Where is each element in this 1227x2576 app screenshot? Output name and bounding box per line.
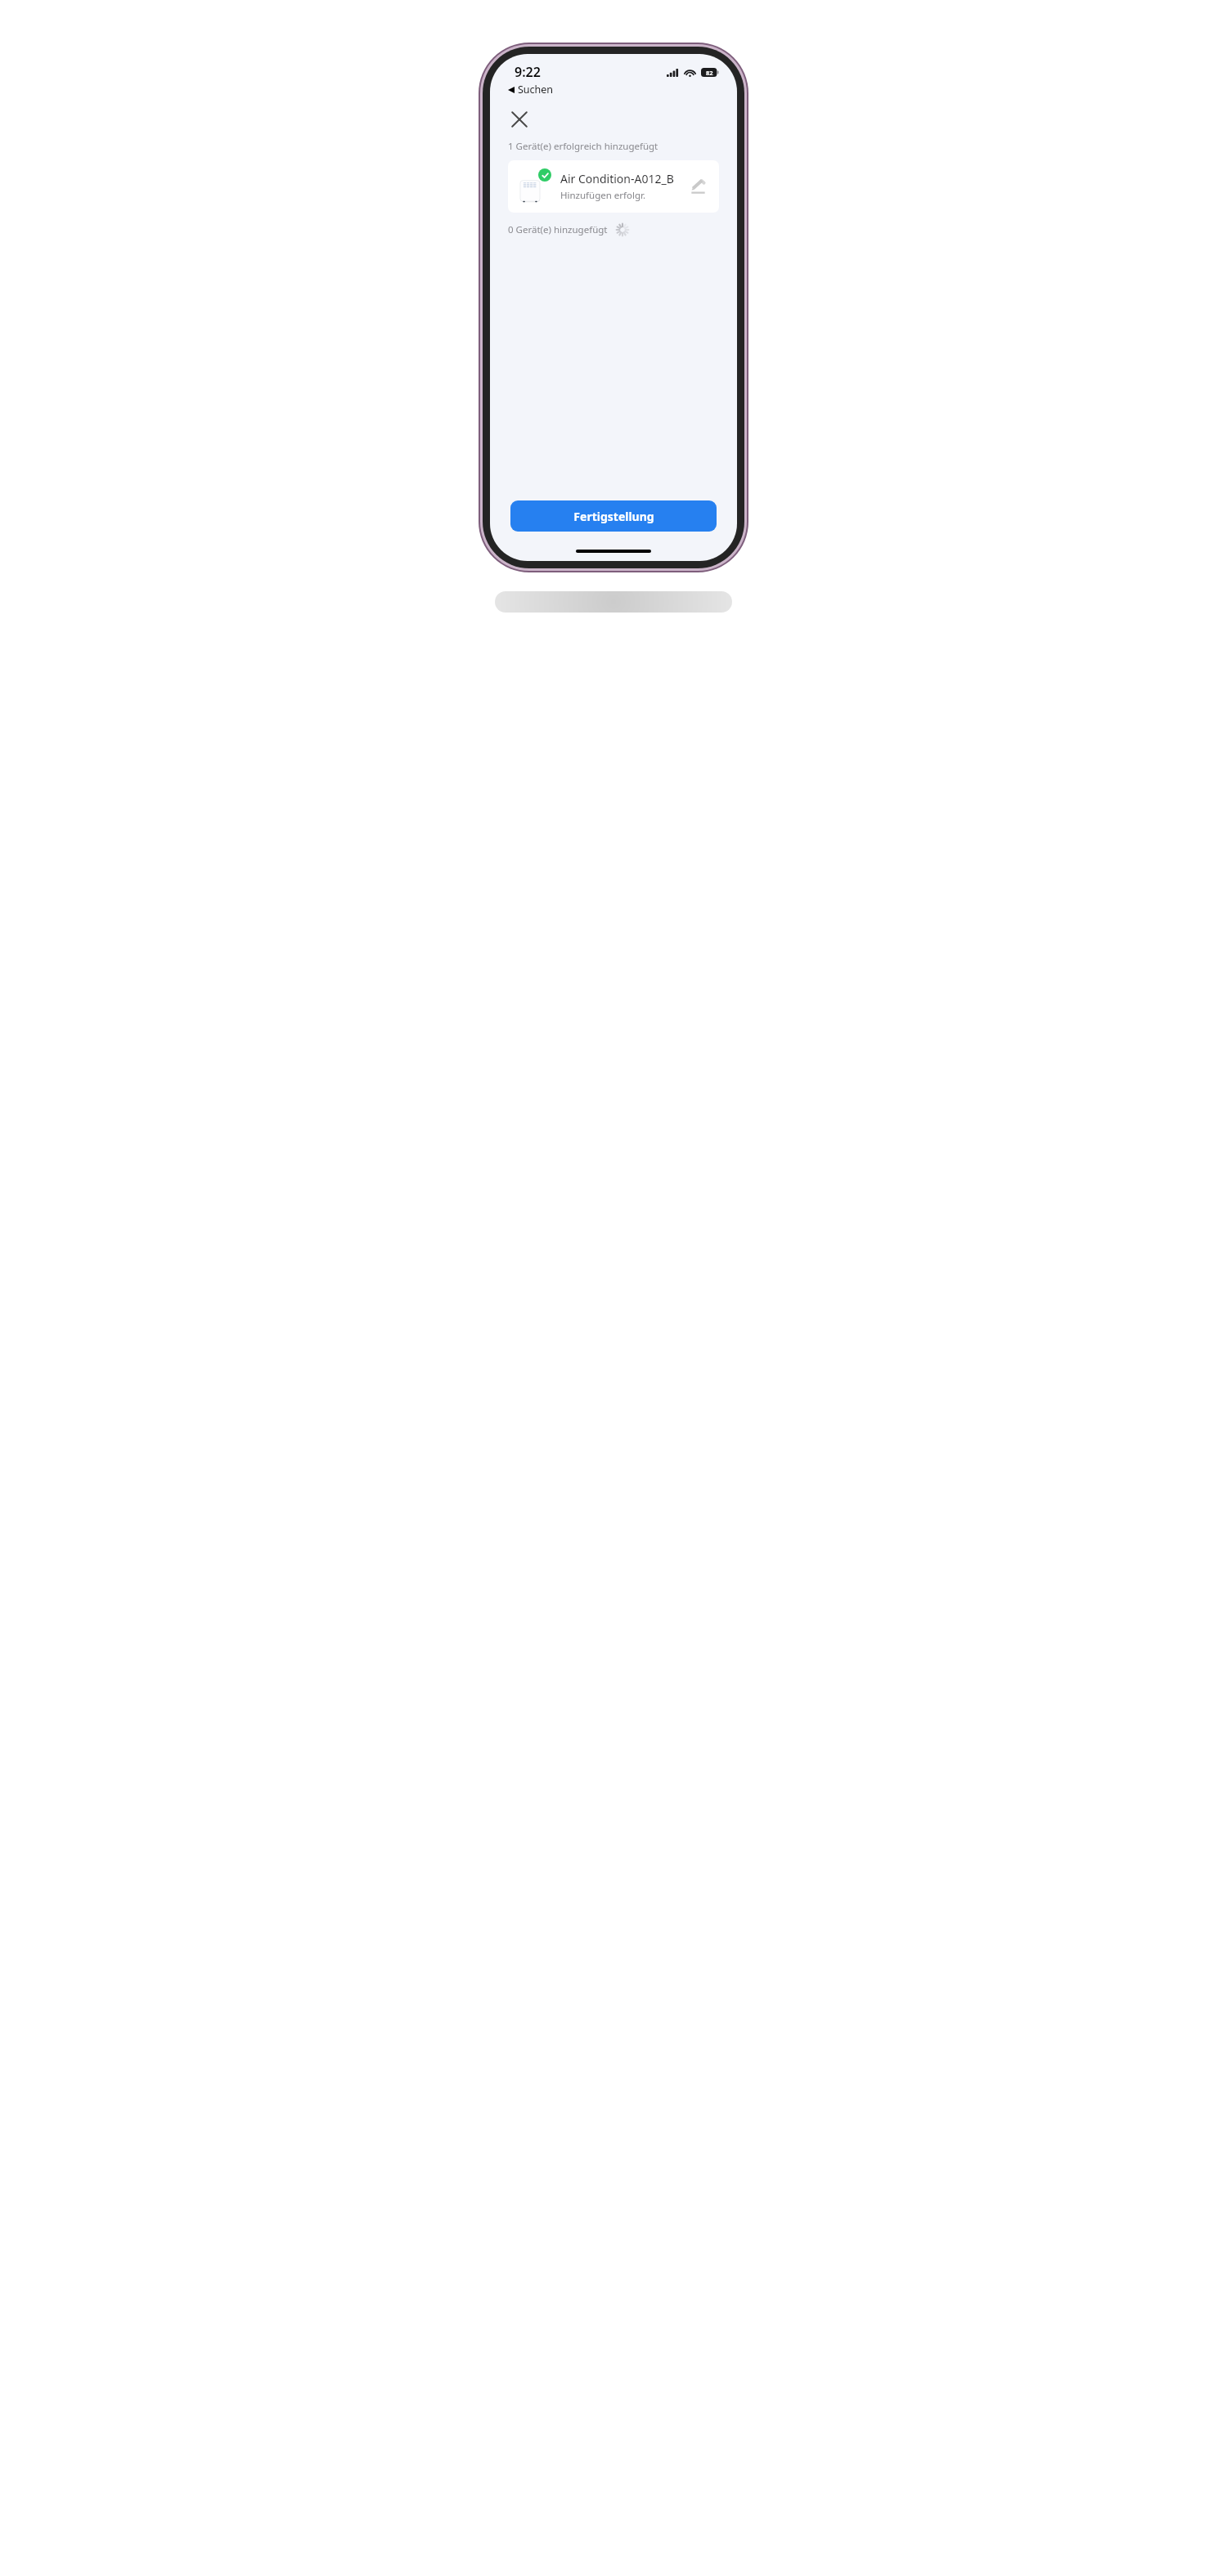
staticText: Hinzufügen erfolgr. [560, 189, 646, 202]
button[interactable]: Air Condition-A012_B [508, 160, 719, 213]
staticText: 82 [706, 69, 713, 77]
button[interactable]: Fertigstellung [510, 500, 717, 532]
button[interactable]: Schließen [501, 101, 537, 137]
staticText: 0 Gerät(e) hinzugefügt [508, 223, 608, 236]
button[interactable]: Umbenennen [683, 172, 712, 201]
staticText: 9:22 [515, 63, 541, 81]
staticText: Suchen [518, 83, 554, 96]
staticText: Air Condition-A012_B [560, 171, 674, 186]
staticText: 1 Gerät(e) erfolgreich hinzugefügt [508, 140, 658, 153]
staticText: Fertigstellung [573, 509, 654, 524]
